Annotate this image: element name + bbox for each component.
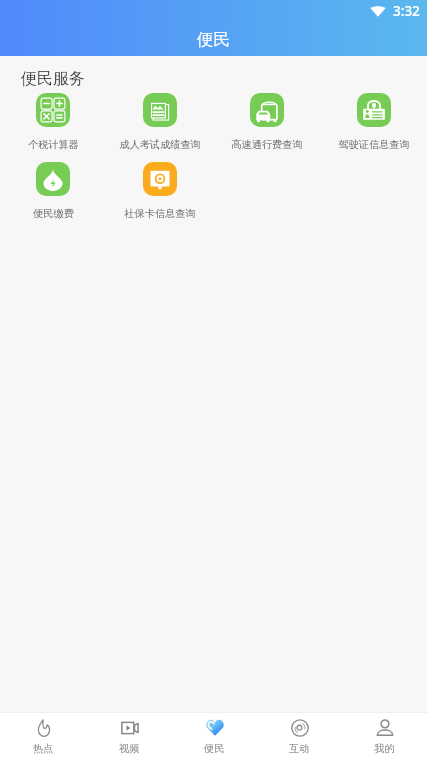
staticText: 成人考试成绩查询 [119, 138, 201, 151]
staticText: 互动 [289, 742, 310, 755]
button[interactable]: 我的 [342, 713, 427, 759]
staticText: 便民服务 [21, 69, 85, 89]
staticText: 热点 [33, 742, 54, 755]
button[interactable]: 互动 [257, 713, 342, 759]
button[interactable]: 社保卡信息查询 [106, 162, 213, 220]
staticText: 视频 [119, 742, 140, 755]
staticText: 驾驶证信息查询 [338, 138, 410, 151]
button[interactable]: 便民缴费 [0, 162, 106, 220]
staticText: 社保卡信息查询 [124, 207, 196, 220]
button[interactable]: 热点 [0, 713, 86, 759]
button[interactable]: 成人考试成绩查询 [106, 93, 213, 151]
staticText: 便民 [204, 742, 225, 755]
staticText: 3:32 [393, 2, 420, 20]
staticText: 个税计算器 [28, 138, 79, 151]
button[interactable]: 个税计算器 [0, 93, 106, 151]
button[interactable]: 便民 [172, 713, 257, 759]
staticText: 便民 [197, 29, 230, 50]
staticText: 我的 [374, 742, 395, 755]
staticText: 高速通行费查询 [231, 138, 303, 151]
button[interactable]: 高速通行费查询 [213, 93, 320, 151]
staticText: 便民缴费 [33, 207, 74, 220]
button[interactable]: 视频 [86, 713, 172, 759]
button[interactable]: 驾驶证信息查询 [320, 93, 427, 151]
